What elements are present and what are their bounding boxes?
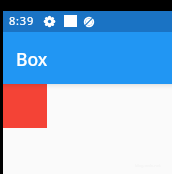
button[interactable]: Settings <box>44 16 55 27</box>
staticText: 8:39 <box>9 13 35 28</box>
button[interactable]: Do not disturb <box>84 17 94 27</box>
staticText: Box <box>16 47 48 71</box>
button[interactable]: Box <box>3 32 172 84</box>
button[interactable]: Red box <box>3 84 47 128</box>
